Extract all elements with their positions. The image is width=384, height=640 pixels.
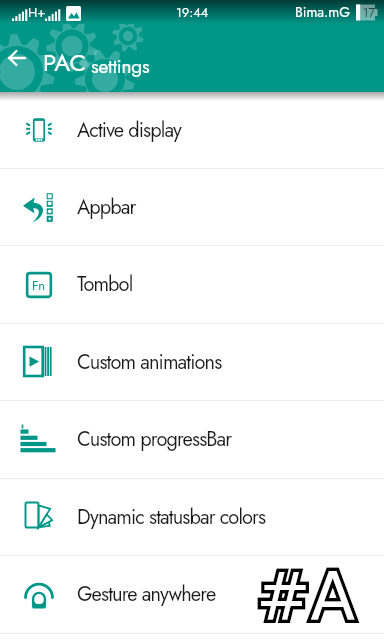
- button[interactable]: Custom progressBar: [0, 401, 384, 478]
- button[interactable]: Appbar: [0, 169, 384, 245]
- staticText: #A: [256, 559, 355, 635]
- button[interactable]: Fn: [0, 246, 384, 323]
- button[interactable]: Custom animations: [0, 324, 384, 400]
- staticText: Active display: [77, 116, 181, 145]
- staticText: #A: [256, 559, 355, 635]
- staticText: Gesture anywhere: [77, 580, 216, 609]
- button[interactable]: Active display: [0, 92, 384, 168]
- staticText: 17: [363, 4, 375, 21]
- staticText: H+: [28, 3, 46, 22]
- staticText: 19:44: [176, 3, 209, 22]
- button[interactable]: Back: [0, 24, 34, 92]
- staticText: Appbar: [77, 193, 136, 222]
- staticText: Bima.mG: [295, 2, 351, 22]
- staticText: Tombol: [77, 270, 133, 299]
- staticText: Custom animations: [77, 348, 222, 377]
- button[interactable]: Gesture anywhere: [0, 556, 384, 633]
- staticText: PAC: [43, 45, 86, 80]
- button[interactable]: Dynamic statusbar colors: [0, 479, 384, 555]
- staticText: settings: [91, 53, 150, 80]
- staticText: Dynamic statusbar colors: [77, 503, 266, 532]
- staticText: Custom progressBar: [77, 425, 232, 454]
- staticText: Fn: [32, 276, 46, 295]
